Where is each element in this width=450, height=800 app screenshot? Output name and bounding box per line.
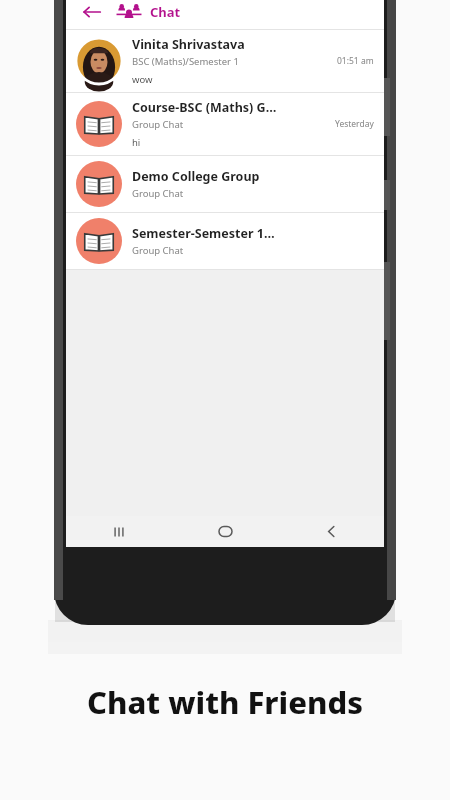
button[interactable]: Demo College Group: [66, 156, 384, 212]
staticText: Group Chat: [132, 187, 184, 200]
staticText: hi: [132, 136, 141, 149]
staticText: Group Chat: [132, 244, 184, 257]
staticText: Yesterday: [335, 118, 374, 130]
staticText: Demo College Group: [132, 168, 260, 185]
staticText: Vinita Shrivastava: [132, 36, 245, 53]
staticText: Chat with Friends: [87, 681, 363, 723]
button[interactable]: Semester-Semester 1…: [66, 213, 384, 269]
button[interactable]: Home: [172, 516, 278, 547]
staticText: 01:51 am: [337, 55, 374, 67]
button[interactable]: Recent apps: [66, 516, 172, 547]
staticText: Course-BSC (Maths) G…: [132, 99, 277, 116]
button[interactable]: Vinita Shrivastava: [66, 30, 384, 92]
staticText: Semester-Semester 1…: [132, 225, 275, 242]
staticText: wow: [132, 73, 153, 86]
button[interactable]: Back: [278, 516, 384, 547]
staticText: BSC (Maths)/Semester 1: [132, 55, 239, 68]
staticText: Group Chat: [132, 118, 184, 131]
button[interactable]: Course-BSC (Maths) G…: [66, 93, 384, 155]
staticText: Chat: [150, 3, 181, 21]
button[interactable]: Back: [80, 0, 104, 24]
